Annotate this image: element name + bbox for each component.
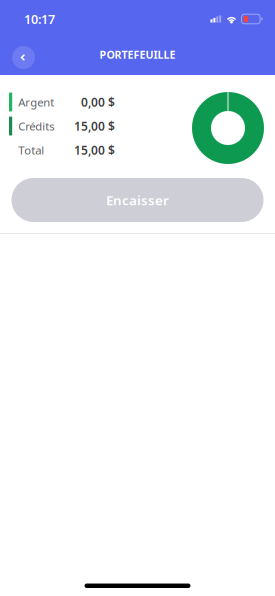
staticText: Total (18, 142, 44, 158)
staticText: 15,00 $ (74, 142, 115, 158)
staticText: Argent (18, 94, 54, 110)
staticText: PORTEFEUILLE (99, 47, 175, 62)
staticText: 0,00 $ (81, 94, 115, 110)
staticText: Encaisser (106, 191, 169, 209)
staticText: 10:17 (24, 10, 55, 28)
staticText: 15,00 $ (74, 118, 115, 134)
button[interactable]: Encaisser (11, 178, 263, 222)
button[interactable]: Back (12, 46, 35, 69)
staticText: Crédits (18, 118, 54, 134)
